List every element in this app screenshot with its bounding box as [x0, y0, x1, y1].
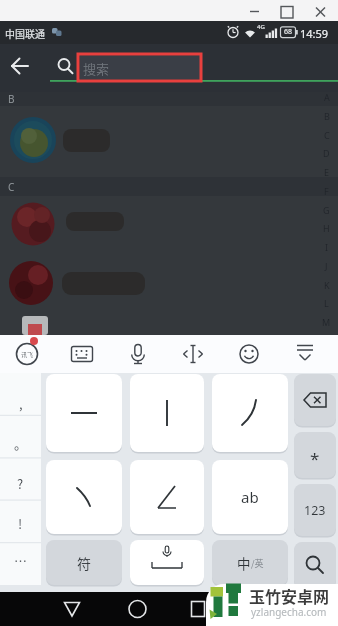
staticText: L: [324, 297, 329, 309]
button[interactable]: [130, 460, 204, 534]
button[interactable]: ab: [212, 460, 288, 534]
staticText: 14:59: [300, 26, 329, 41]
button[interactable]: [46, 374, 122, 452]
button[interactable]: [182, 592, 222, 626]
button[interactable]: [2, 48, 40, 86]
button[interactable]: [130, 540, 204, 585]
button[interactable]: [174, 336, 212, 373]
button[interactable]: [48, 48, 338, 88]
button[interactable]: [130, 374, 204, 452]
button[interactable]: [286, 336, 324, 373]
staticText: F: [324, 185, 329, 197]
button[interactable]: [0, 106, 338, 176]
staticText: 中: [237, 553, 251, 573]
button[interactable]: [46, 460, 122, 534]
staticText: M: [322, 316, 331, 328]
staticText: A: [324, 91, 330, 103]
button[interactable]: [0, 254, 338, 316]
staticText: 123: [304, 502, 326, 519]
staticText: ab: [241, 487, 259, 507]
button[interactable]: *: [294, 432, 336, 478]
button[interactable]: [8, 336, 46, 373]
button[interactable]: [52, 592, 92, 626]
button[interactable]: [294, 374, 336, 426]
button[interactable]: ?: [0, 468, 41, 498]
staticText: 中国联通: [5, 26, 45, 40]
staticText: C: [8, 180, 15, 194]
staticText: 68: [284, 27, 293, 37]
staticText: 讯飞: [21, 350, 34, 359]
staticText: 。: [14, 434, 28, 453]
button[interactable]: !: [0, 508, 41, 538]
staticText: 符: [77, 553, 91, 573]
staticText: 4G: [257, 23, 265, 31]
staticText: yzlangecha.com: [251, 605, 327, 619]
button[interactable]: [212, 374, 288, 452]
staticText: …: [14, 551, 28, 570]
button[interactable]: 中: [212, 540, 288, 585]
staticText: ,: [19, 394, 23, 413]
staticText: G: [323, 204, 330, 216]
button[interactable]: [119, 336, 157, 373]
staticText: 玉竹安卓网: [249, 584, 330, 607]
button[interactable]: [230, 336, 268, 373]
button[interactable]: 符: [46, 540, 122, 585]
button[interactable]: [63, 336, 101, 373]
staticText: H: [323, 222, 330, 234]
staticText: !: [18, 514, 23, 533]
button[interactable]: [294, 542, 336, 588]
staticText: *: [310, 447, 320, 470]
staticText: ?: [17, 474, 24, 493]
staticText: J: [325, 260, 328, 272]
button[interactable]: 123: [294, 484, 336, 536]
staticText: I: [325, 241, 329, 253]
button[interactable]: [0, 196, 338, 254]
staticText: 搜索: [83, 59, 110, 78]
staticText: B: [324, 110, 330, 122]
staticText: /英: [251, 557, 264, 570]
staticText: C: [324, 129, 330, 141]
button[interactable]: …: [0, 545, 41, 575]
button[interactable]: [117, 592, 157, 626]
staticText: K: [324, 279, 330, 291]
staticText: D: [323, 147, 330, 159]
staticText: E: [324, 166, 330, 178]
button[interactable]: 。: [0, 428, 41, 458]
staticText: B: [8, 92, 15, 106]
button[interactable]: ,: [0, 388, 41, 418]
